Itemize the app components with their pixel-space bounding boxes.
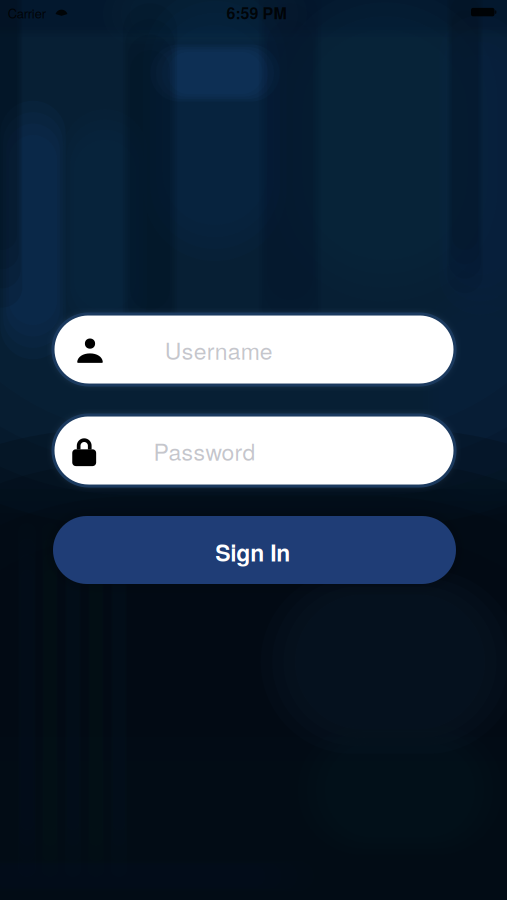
staticText: 6:59 PM <box>226 1 286 24</box>
button[interactable]: Username <box>53 314 455 385</box>
staticText: Password <box>153 434 255 467</box>
staticText: Carrier <box>8 4 46 22</box>
button[interactable]: Password <box>53 415 455 486</box>
button[interactable]: Sign In <box>53 516 456 584</box>
staticText: Username <box>165 333 273 366</box>
staticText: Sign In <box>215 536 290 569</box>
